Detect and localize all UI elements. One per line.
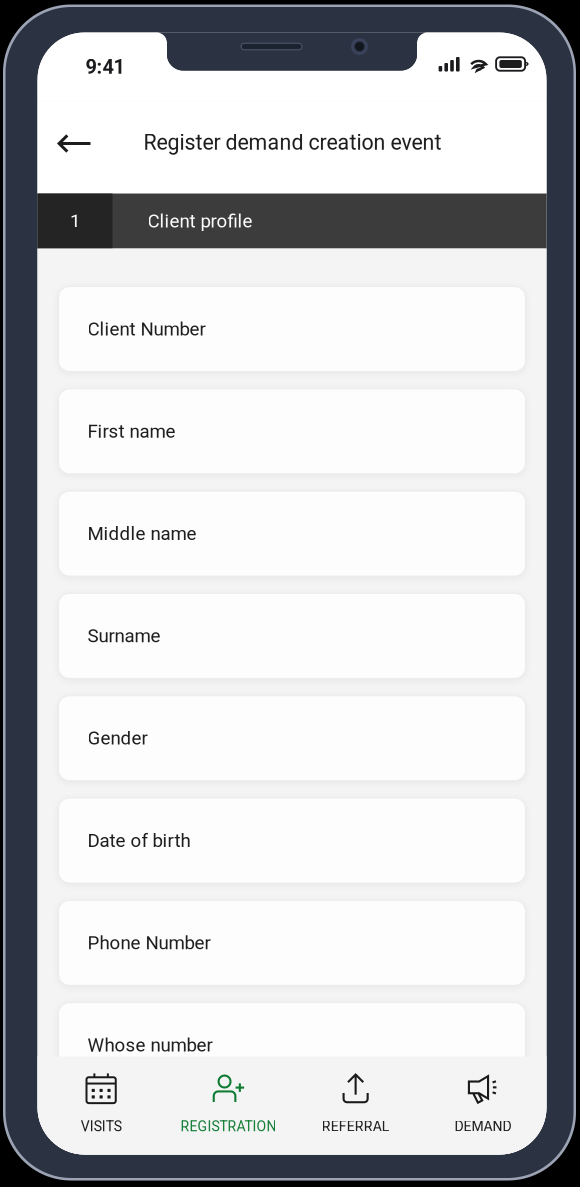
staticText: Whose number [87, 1034, 212, 1056]
button[interactable]: Client Number [58, 286, 525, 371]
button[interactable]: VISITS [37, 1056, 165, 1154]
button[interactable]: Date of birth [58, 798, 525, 883]
staticText: Address [87, 1136, 157, 1158]
staticText: 9:41 [85, 55, 124, 79]
staticText: 1 [70, 210, 80, 232]
staticText: First name [87, 420, 175, 442]
button[interactable]: Surname [58, 593, 525, 678]
staticText: DEMAND [454, 1118, 511, 1135]
staticText: Client Number [87, 318, 205, 340]
staticText: Client profile [147, 210, 252, 232]
staticText: REGISTRATION [180, 1118, 276, 1135]
staticText: REFERRAL [322, 1118, 390, 1135]
button[interactable]: Phone Number [58, 900, 525, 985]
button[interactable]: Middle name [58, 491, 525, 576]
staticText: Register demand creation event [143, 130, 441, 155]
button[interactable]: Back [43, 112, 105, 174]
button[interactable]: REFERRAL [292, 1056, 419, 1154]
button[interactable]: Gender [58, 696, 525, 781]
staticText: Gender [87, 727, 147, 749]
button[interactable]: Whose number [58, 1003, 525, 1088]
staticText: VISITS [81, 1118, 122, 1135]
button[interactable]: REGISTRATION [165, 1056, 292, 1154]
button[interactable]: DEMAND [419, 1056, 546, 1154]
staticText: Phone Number [87, 932, 210, 954]
button[interactable]: First name [58, 389, 525, 474]
staticText: Surname [87, 625, 160, 647]
staticText: Date of birth [87, 830, 190, 851]
button[interactable]: Address [58, 1105, 525, 1187]
staticText: Middle name [87, 523, 196, 545]
